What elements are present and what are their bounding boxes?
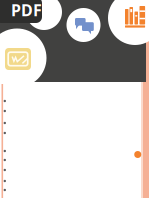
button[interactable]: PDF bbox=[0, 0, 47, 26]
staticText: PDF bbox=[11, 0, 42, 21]
